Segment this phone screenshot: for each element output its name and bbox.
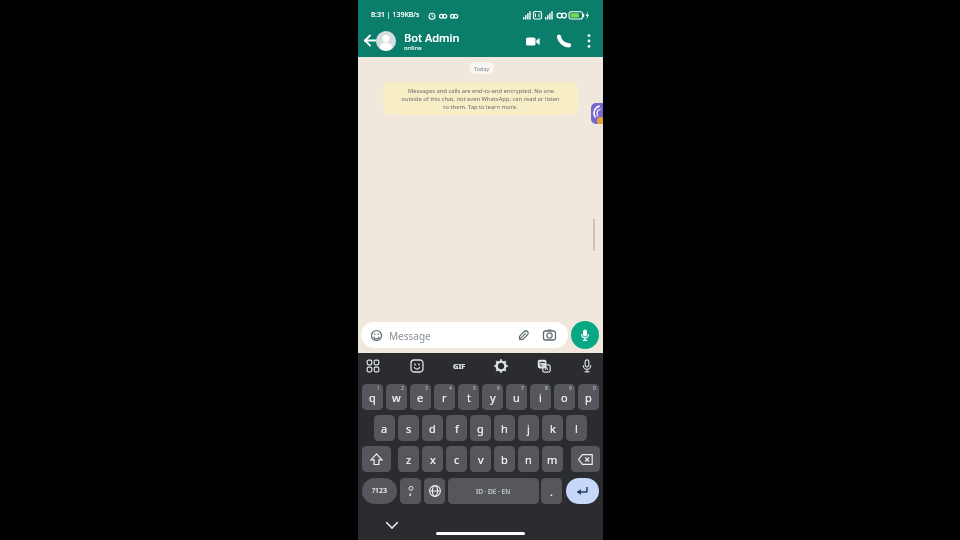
- button[interactable]: [492, 357, 510, 375]
- button[interactable]: j: [518, 415, 539, 441]
- staticText: q: [369, 390, 376, 405]
- button[interactable]: Messages and calls are end-to-end encryp…: [383, 82, 578, 115]
- staticText: h: [501, 421, 508, 436]
- staticText: g: [477, 421, 484, 436]
- staticText: e: [417, 390, 424, 405]
- button[interactable]: [362, 446, 391, 472]
- staticText: p: [585, 390, 592, 405]
- button[interactable]: ?123: [362, 478, 397, 504]
- staticText: .: [550, 484, 553, 499]
- staticText: 3: [425, 385, 428, 392]
- staticText: 7: [521, 385, 524, 392]
- button[interactable]: [364, 357, 382, 375]
- staticText: t: [467, 390, 471, 405]
- button[interactable]: p: [578, 384, 599, 410]
- button[interactable]: Message: [361, 322, 568, 348]
- staticText: y: [490, 390, 496, 405]
- staticText: 4: [449, 385, 452, 392]
- staticText: z: [406, 452, 412, 467]
- button[interactable]: k: [542, 415, 563, 441]
- staticText: s: [406, 421, 412, 436]
- staticText: o: [561, 390, 568, 405]
- staticText: l: [575, 421, 578, 436]
- staticText: 8: [545, 385, 548, 392]
- staticText: c: [454, 452, 460, 467]
- button[interactable]: [571, 321, 599, 349]
- staticText: online: [404, 44, 422, 52]
- staticText: n: [525, 452, 532, 467]
- button[interactable]: r: [434, 384, 455, 410]
- button[interactable]: z: [398, 446, 419, 472]
- button[interactable]: u: [506, 384, 527, 410]
- button[interactable]: [382, 515, 402, 535]
- button[interactable]: [521, 29, 545, 53]
- button[interactable]: [578, 357, 596, 375]
- button[interactable]: w: [386, 384, 407, 410]
- staticText: j: [527, 421, 530, 436]
- staticText: x: [430, 452, 436, 467]
- button[interactable]: d: [422, 415, 443, 441]
- staticText: 6: [497, 385, 500, 392]
- button[interactable]: [517, 329, 530, 342]
- staticText: Messages and calls are end-to-end encryp…: [408, 87, 554, 95]
- button[interactable]: i: [530, 384, 551, 410]
- staticText: Bot Admin: [404, 30, 460, 45]
- button[interactable]: s: [398, 415, 419, 441]
- button[interactable]: q: [362, 384, 383, 410]
- staticText: 0: [593, 385, 596, 392]
- staticText: b: [501, 452, 508, 467]
- button[interactable]: n: [518, 446, 539, 472]
- staticText: 5: [473, 385, 476, 392]
- button[interactable]: [359, 30, 381, 52]
- staticText: w: [392, 390, 401, 405]
- button[interactable]: x: [422, 446, 443, 472]
- staticText: outside of this chat, not even WhatsApp,…: [401, 95, 560, 103]
- staticText: 9: [569, 385, 572, 392]
- button[interactable]: t: [458, 384, 479, 410]
- button[interactable]: y: [482, 384, 503, 410]
- staticText: Message: [389, 329, 431, 343]
- button[interactable]: o: [554, 384, 575, 410]
- staticText: 1: [377, 385, 380, 392]
- staticText: ID · DE · EN: [476, 487, 511, 496]
- staticText: Today: [474, 65, 490, 72]
- button[interactable]: [566, 478, 599, 504]
- button[interactable]: [571, 446, 600, 472]
- button[interactable]: b: [494, 446, 515, 472]
- staticText: v: [478, 452, 484, 467]
- staticText: m: [547, 452, 558, 467]
- button[interactable]: .: [541, 478, 562, 504]
- staticText: i: [539, 390, 542, 405]
- staticText: GIF: [453, 361, 466, 371]
- button[interactable]: f: [446, 415, 467, 441]
- button[interactable]: ID · DE · EN: [448, 478, 539, 504]
- button[interactable]: [550, 29, 574, 53]
- staticText: u: [513, 390, 520, 405]
- button[interactable]: [376, 31, 396, 51]
- button[interactable]: [408, 357, 426, 375]
- staticText: d: [429, 421, 436, 436]
- button[interactable]: h: [494, 415, 515, 441]
- button[interactable]: GIF: [450, 357, 468, 375]
- button[interactable]: [543, 329, 556, 342]
- staticText: f: [455, 421, 459, 436]
- staticText: 2: [401, 385, 404, 392]
- staticText: r: [442, 390, 447, 405]
- button[interactable]: m: [542, 446, 563, 472]
- staticText: k: [550, 421, 556, 436]
- button[interactable]: c: [446, 446, 467, 472]
- staticText: to them. Tap to learn more.: [443, 103, 518, 111]
- staticText: a: [381, 421, 388, 436]
- button[interactable]: e: [410, 384, 431, 410]
- staticText: 8:31 | 139KB/s: [371, 10, 420, 20]
- button[interactable]: [535, 357, 553, 375]
- button[interactable]: [424, 478, 445, 504]
- button[interactable]: [579, 31, 599, 51]
- button[interactable]: v: [470, 446, 491, 472]
- button[interactable]: g: [470, 415, 491, 441]
- staticText: ?123: [372, 486, 388, 496]
- button[interactable]: a: [374, 415, 395, 441]
- button[interactable]: l: [566, 415, 587, 441]
- button[interactable]: [400, 478, 421, 504]
